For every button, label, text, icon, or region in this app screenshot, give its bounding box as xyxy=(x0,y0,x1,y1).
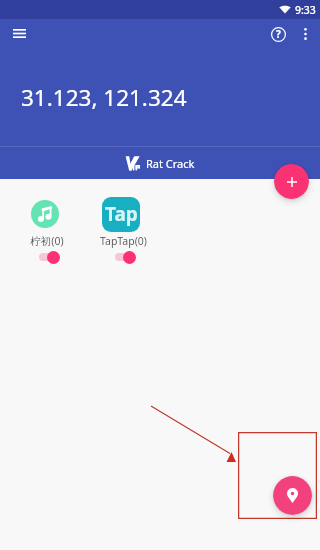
staticText: TapTap(0) xyxy=(100,234,147,248)
staticText: ? xyxy=(276,27,281,41)
button[interactable]: Help xyxy=(264,20,292,48)
button[interactable]: Rat Crack xyxy=(0,147,320,179)
button[interactable]: Toggle 柠初(0) xyxy=(28,250,62,264)
staticText: 31.123, 121.324 xyxy=(21,82,187,113)
button[interactable]: TapTap app xyxy=(102,197,140,232)
button[interactable]: Menu xyxy=(6,20,33,47)
staticText: Rat Crack xyxy=(146,156,195,171)
button[interactable]: My location xyxy=(273,476,312,515)
staticText: 柠初(0) xyxy=(30,234,64,248)
button[interactable]: Toggle TapTap(0) xyxy=(104,250,138,264)
button[interactable]: 柠初 app xyxy=(31,200,59,228)
staticText: 9:33 xyxy=(295,3,316,17)
staticText: Tap xyxy=(105,201,138,227)
button[interactable]: Add xyxy=(274,164,309,199)
button[interactable]: More options xyxy=(292,20,319,47)
